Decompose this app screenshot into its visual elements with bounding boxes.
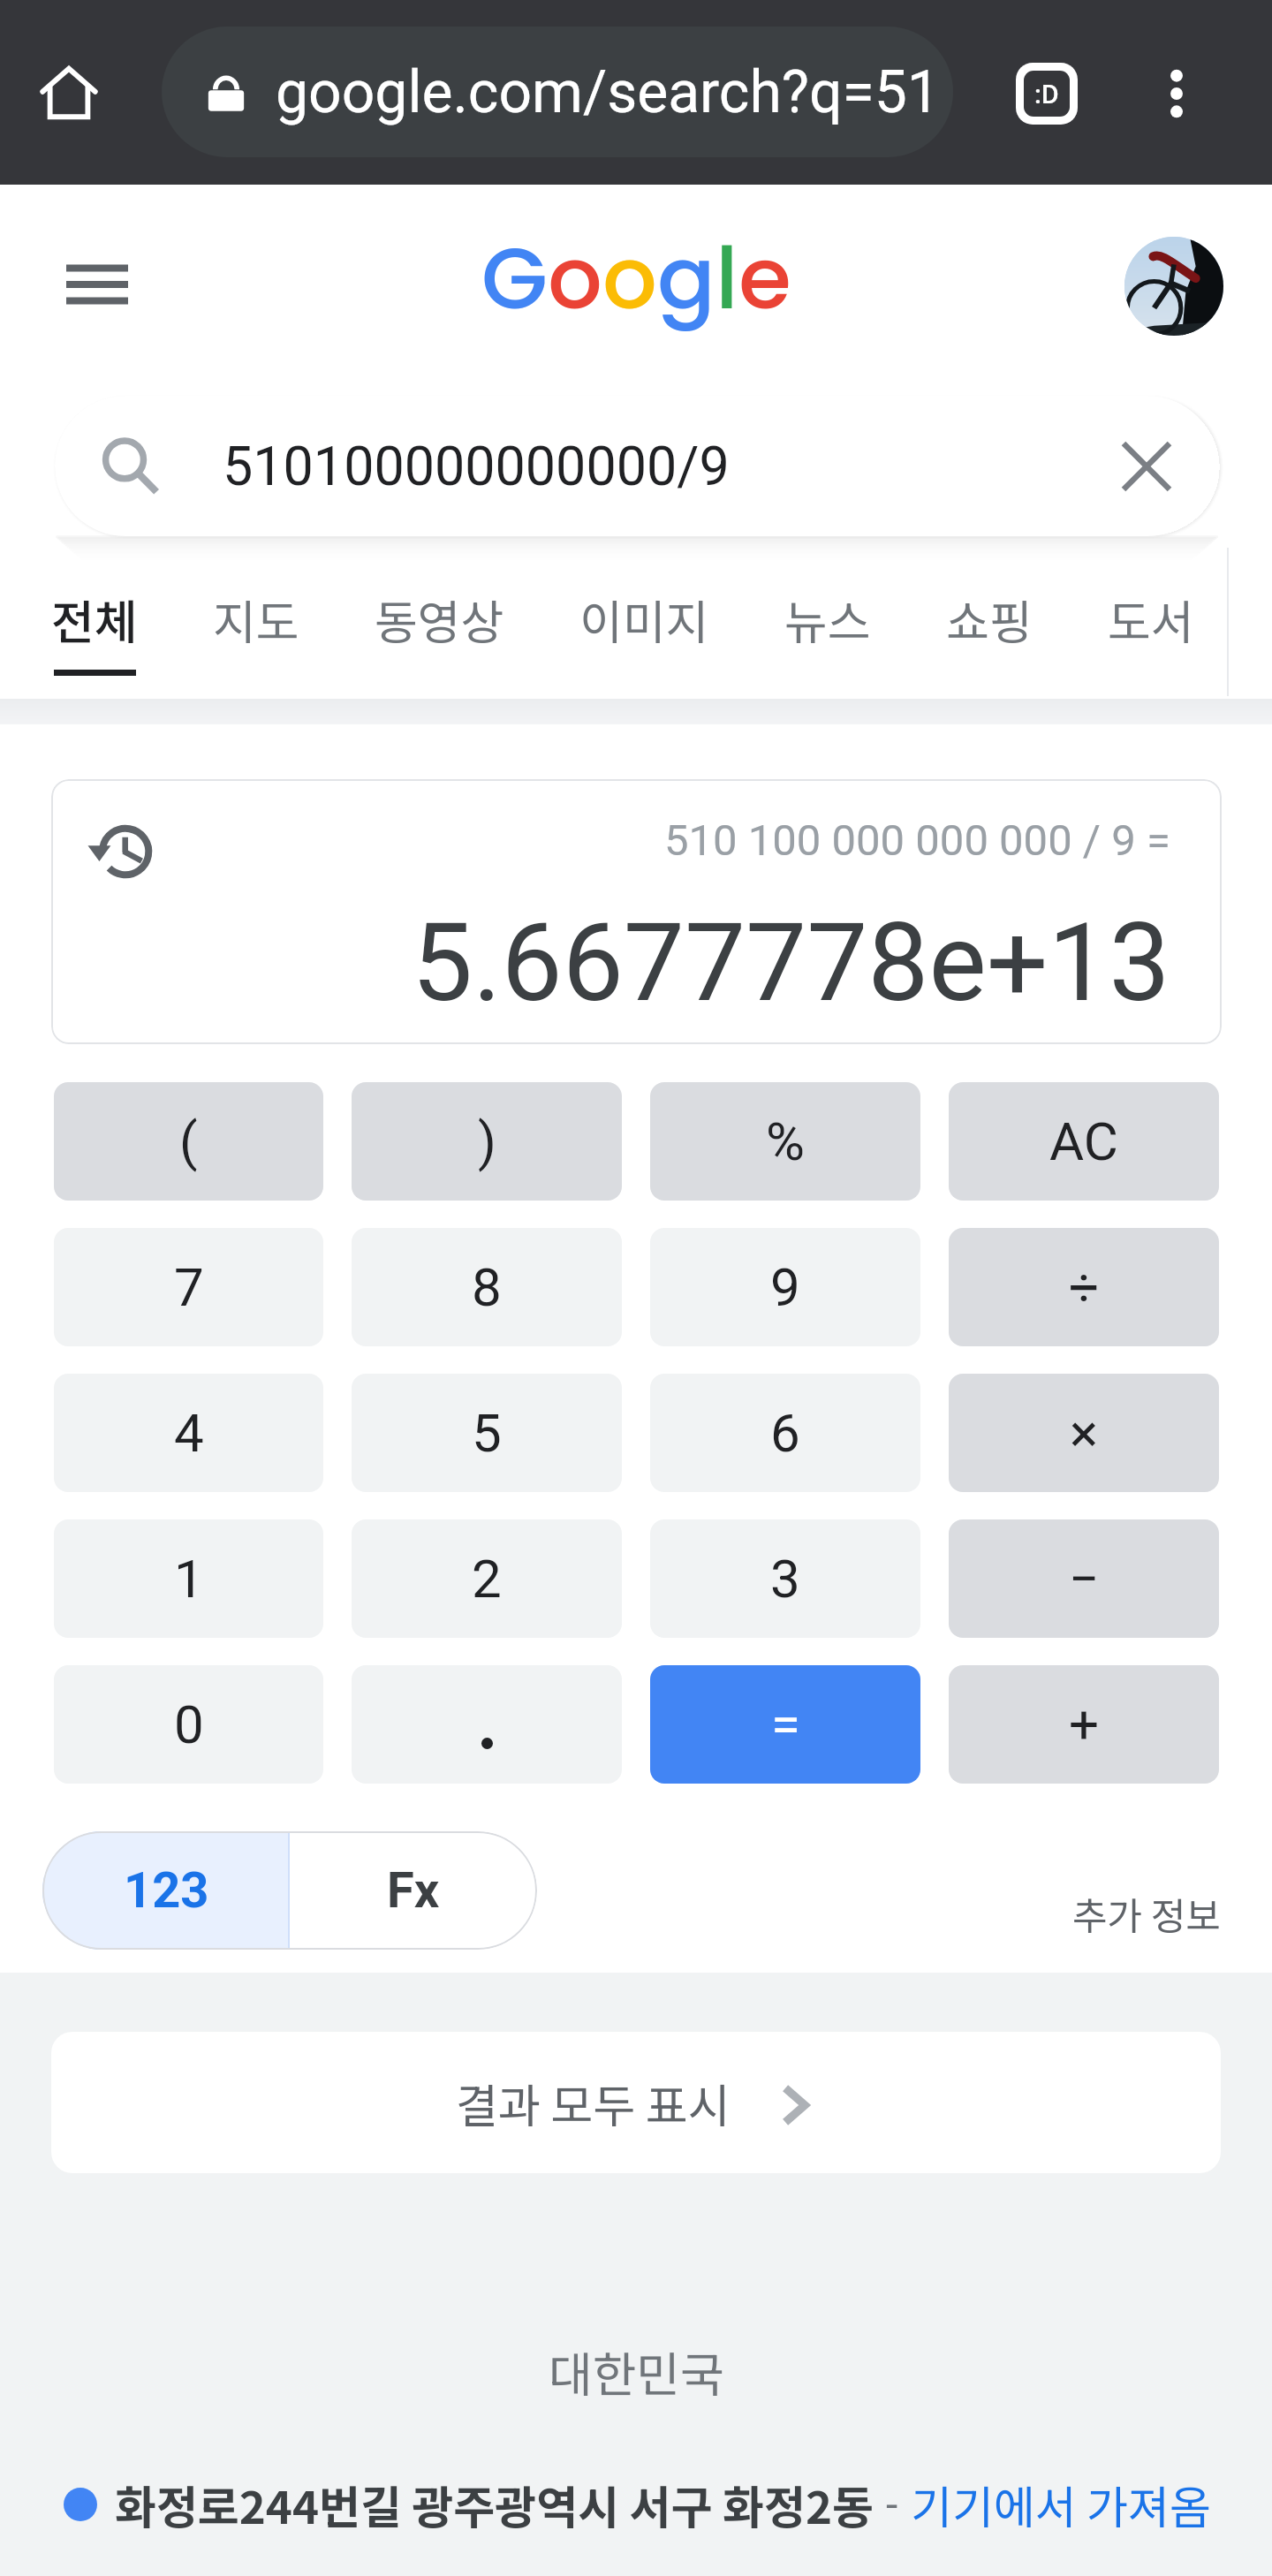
staticText: 5.6677778e+13 (412, 899, 1170, 1027)
button[interactable]: = (650, 1665, 920, 1784)
button[interactable]: 0 (54, 1665, 323, 1784)
button[interactable]: 쇼핑 (946, 548, 1033, 700)
staticText: 5 (472, 1402, 502, 1464)
button[interactable]: Tabs (1001, 48, 1093, 140)
staticText: AC (1049, 1110, 1118, 1172)
staticText: 지도 (213, 586, 299, 654)
staticText: 추가 정보 (1072, 1886, 1221, 1941)
staticText: 7 (174, 1256, 204, 1318)
button[interactable]: 8 (352, 1228, 622, 1346)
staticText: :D (1034, 79, 1059, 110)
button[interactable]: 도서 (1108, 548, 1194, 700)
button[interactable]: + (949, 1665, 1219, 1784)
button[interactable]: 5 (352, 1374, 622, 1492)
button[interactable]: ( (54, 1082, 323, 1201)
staticText: + (1069, 1693, 1100, 1755)
button[interactable]: 뉴스 (784, 548, 871, 700)
button[interactable]: Home (23, 47, 115, 139)
staticText: 쇼핑 (946, 586, 1033, 654)
staticText: 510100000000000/9 (223, 435, 730, 497)
button[interactable]: 이미지 (579, 548, 709, 700)
button[interactable] (352, 1665, 622, 1784)
button[interactable]: 전체 (51, 548, 138, 700)
button[interactable]: 1 (54, 1519, 323, 1638)
button[interactable]: Clear search (1098, 418, 1195, 515)
staticText: 3 (770, 1548, 800, 1610)
staticText: 6 (770, 1402, 800, 1464)
button[interactable]: 510100000000000/9 (55, 396, 1218, 536)
button[interactable]: 지도 (213, 548, 299, 700)
staticText: % (766, 1110, 805, 1172)
staticText: G (481, 218, 548, 338)
button[interactable]: 7 (54, 1228, 323, 1346)
button[interactable]: Fx (290, 1831, 537, 1950)
staticText: o (602, 218, 657, 338)
staticText: 2 (472, 1548, 502, 1610)
button[interactable]: 3 (650, 1519, 920, 1638)
button[interactable]: History (78, 807, 163, 891)
staticText: google.com/search?q=51 (276, 58, 940, 126)
staticText: × (1070, 1402, 1099, 1464)
staticText: Fx (387, 1861, 440, 1920)
staticText: − (1069, 1548, 1100, 1610)
staticText: 0 (174, 1693, 204, 1755)
staticText: 123 (124, 1861, 209, 1920)
button[interactable]: 추가 정보 (1072, 1886, 1221, 1941)
staticText: 결과 모두 표시 (456, 2070, 731, 2136)
staticText: 이미지 (579, 586, 709, 654)
staticText: g (657, 218, 715, 338)
staticText: o (548, 218, 602, 338)
staticText: l (715, 218, 738, 338)
staticText: 1 (174, 1548, 204, 1610)
staticText: 도서 (1108, 586, 1194, 654)
button[interactable]: 기기에서 가져옴 (911, 2472, 1211, 2537)
staticText: 510 100 000 000 000 / 9 = (664, 815, 1170, 866)
button[interactable]: ÷ (949, 1228, 1219, 1346)
button[interactable]: Account (1124, 237, 1223, 336)
staticText: = (771, 1693, 800, 1755)
staticText: 화정로244번길 광주광역시 서구 화정2동 (115, 2472, 874, 2537)
button[interactable]: 결과 모두 표시 (51, 2032, 1221, 2173)
button[interactable]: AC (949, 1082, 1219, 1201)
staticText: 기기에서 가져옴 (911, 2472, 1211, 2537)
staticText: 전체 (51, 586, 138, 654)
button[interactable]: − (949, 1519, 1219, 1638)
button[interactable]: × (949, 1374, 1219, 1492)
button[interactable]: Menu (51, 236, 148, 333)
staticText: ( (179, 1110, 198, 1172)
button[interactable]: % (650, 1082, 920, 1201)
button[interactable]: 123 (42, 1831, 290, 1950)
button[interactable]: google.com/search?q=51 (162, 27, 953, 157)
button[interactable]: More options (1131, 48, 1223, 140)
button[interactable]: ) (352, 1082, 622, 1201)
button[interactable]: 6 (650, 1374, 920, 1492)
staticText: ÷ (1069, 1256, 1100, 1318)
button[interactable]: 2 (352, 1519, 622, 1638)
staticText: 대한민국 (549, 2337, 724, 2406)
button[interactable]: 동영상 (375, 548, 504, 700)
staticText: 4 (174, 1402, 204, 1464)
staticText: 동영상 (375, 586, 504, 654)
staticText: 9 (770, 1256, 800, 1318)
staticText: 뉴스 (784, 586, 871, 654)
staticText: ) (478, 1110, 496, 1172)
button[interactable]: 9 (650, 1228, 920, 1346)
staticText: - (886, 2480, 898, 2529)
button[interactable]: 4 (54, 1374, 323, 1492)
staticText: 8 (472, 1256, 502, 1318)
staticText: e (738, 218, 791, 338)
